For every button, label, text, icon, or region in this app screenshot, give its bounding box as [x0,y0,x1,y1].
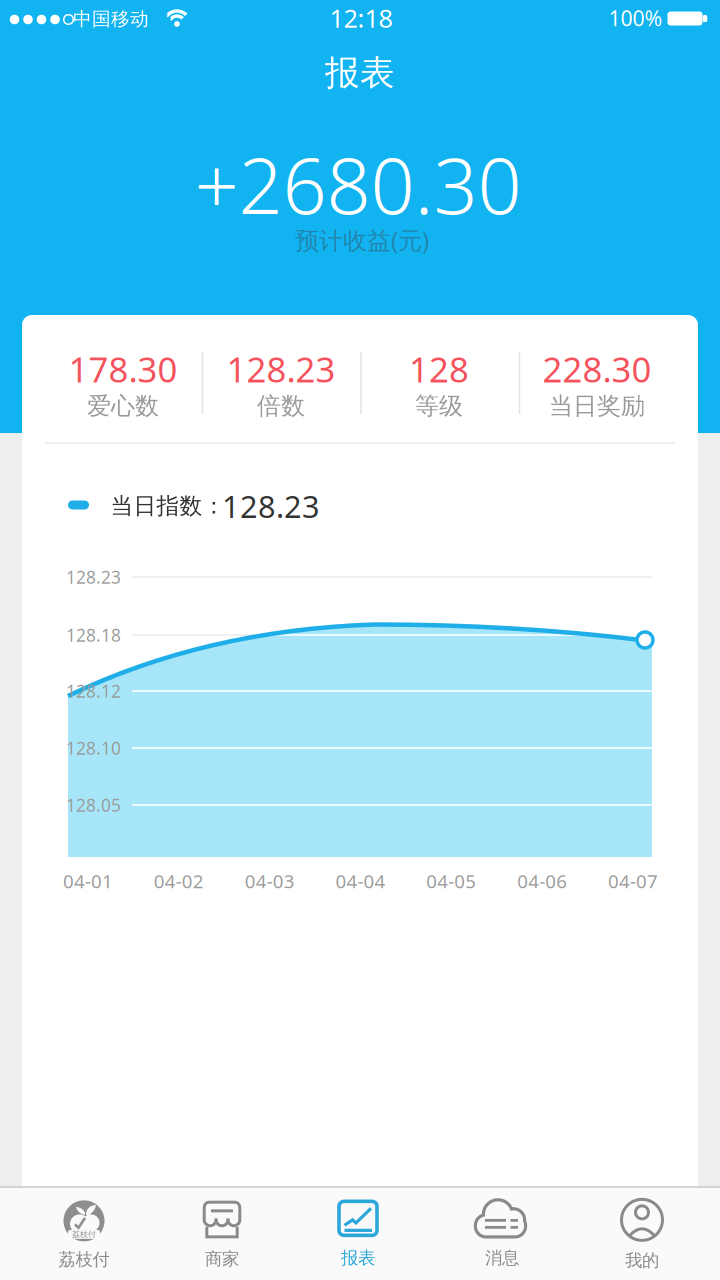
staticText: 128.18 [66,623,121,646]
staticText: 128.23 [226,346,335,392]
staticText: 12:18 [329,1,392,35]
staticText: 我的 [625,1250,659,1271]
staticText: 128.23 [66,565,121,588]
staticText: 04-07 [608,869,658,893]
staticText: 228.30 [542,346,651,392]
staticText: 128.10 [66,736,121,759]
staticText: 04-04 [335,869,385,893]
button[interactable]: 消息 [434,1191,570,1279]
staticText: 04-01 [63,869,113,893]
staticText: 当日指数： [110,492,225,520]
staticText: 04-06 [517,869,567,893]
staticText: 荔枝付 [58,1249,109,1270]
button[interactable]: 商家 [154,1191,290,1279]
staticText: 消息 [485,1247,519,1269]
staticText: +2680.30 [194,133,521,235]
staticText: 128.12 [66,679,121,702]
staticText: 04-05 [426,869,476,893]
staticText: 100% [608,4,662,32]
button[interactable]: 报表 [290,1191,426,1279]
staticText: 当日奖励 [549,391,645,421]
button[interactable]: 荔枝付 [16,1191,152,1279]
staticText: 04-03 [245,869,295,893]
staticText: 预计收益(元) [295,224,429,256]
button[interactable]: 我的 [574,1191,710,1279]
staticText: 等级 [415,391,463,421]
staticText: 商家 [205,1248,239,1270]
staticText: 04-02 [154,869,204,893]
staticText: 178.30 [68,346,177,392]
staticText: 倍数 [257,391,305,421]
staticText: 爱心数 [87,391,159,421]
staticText: 128.23 [222,486,320,526]
staticText: 128 [409,346,469,392]
staticText: 128.05 [66,793,121,816]
staticText: 报表 [341,1247,375,1269]
staticText: 报表 [325,52,395,94]
staticText: 荔枝付 [72,1229,96,1239]
staticText: 中国移动 [73,7,149,30]
